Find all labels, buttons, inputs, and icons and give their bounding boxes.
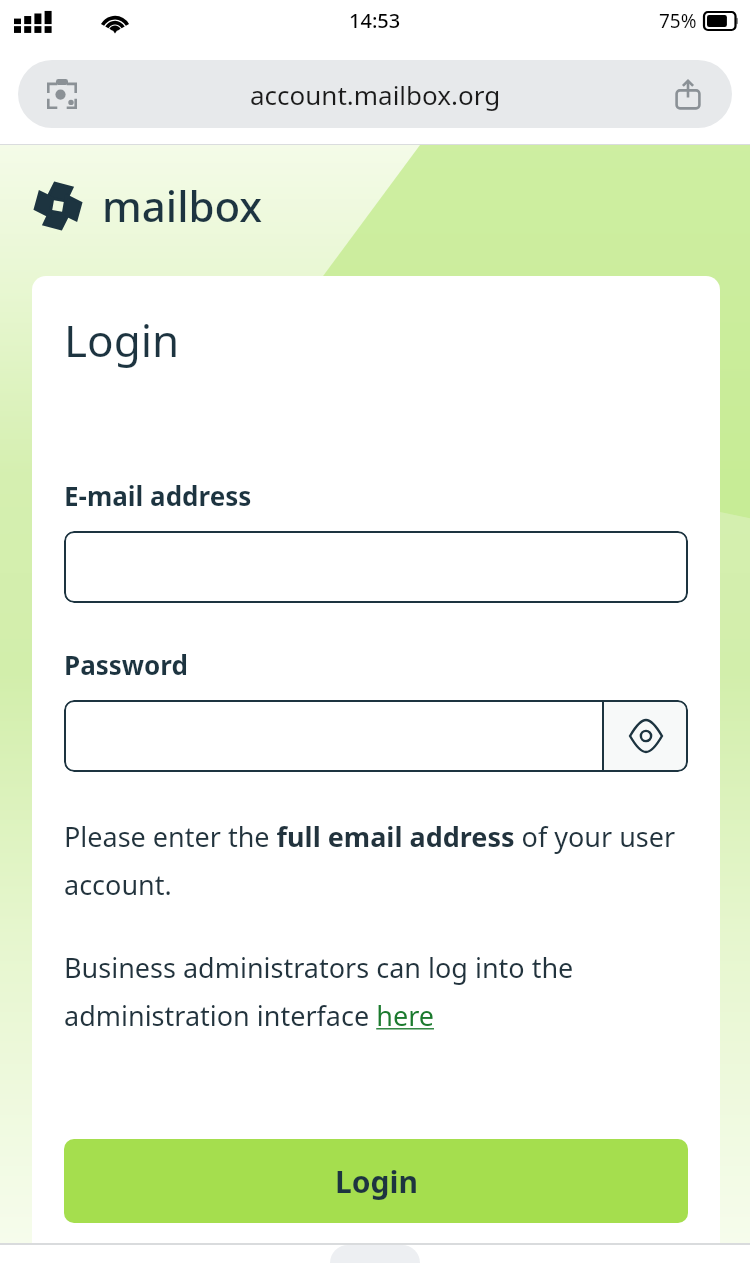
staticText: account.mailbox.org bbox=[250, 77, 501, 112]
button[interactable]: Search with camera bbox=[40, 72, 84, 116]
staticText: 75% bbox=[659, 8, 697, 34]
staticText: 14:53 bbox=[349, 7, 401, 34]
staticText: Password bbox=[64, 647, 188, 682]
button[interactable]: Share bbox=[666, 72, 710, 116]
staticText: Please enter the full email address of y… bbox=[64, 818, 688, 903]
button[interactable]: Search with camera bbox=[18, 60, 732, 128]
button[interactable] bbox=[64, 531, 688, 603]
staticText: mailbox bbox=[102, 177, 263, 234]
staticText: Login bbox=[64, 310, 180, 370]
staticText: E-mail address bbox=[64, 478, 252, 513]
button[interactable]: Show password bbox=[604, 700, 688, 772]
button[interactable] bbox=[64, 700, 688, 772]
staticText: Login bbox=[335, 1161, 418, 1202]
button[interactable]: mailbox bbox=[32, 177, 263, 234]
button[interactable]: Business administrators can log into the… bbox=[64, 949, 688, 1034]
button[interactable]: Login bbox=[64, 1139, 688, 1223]
